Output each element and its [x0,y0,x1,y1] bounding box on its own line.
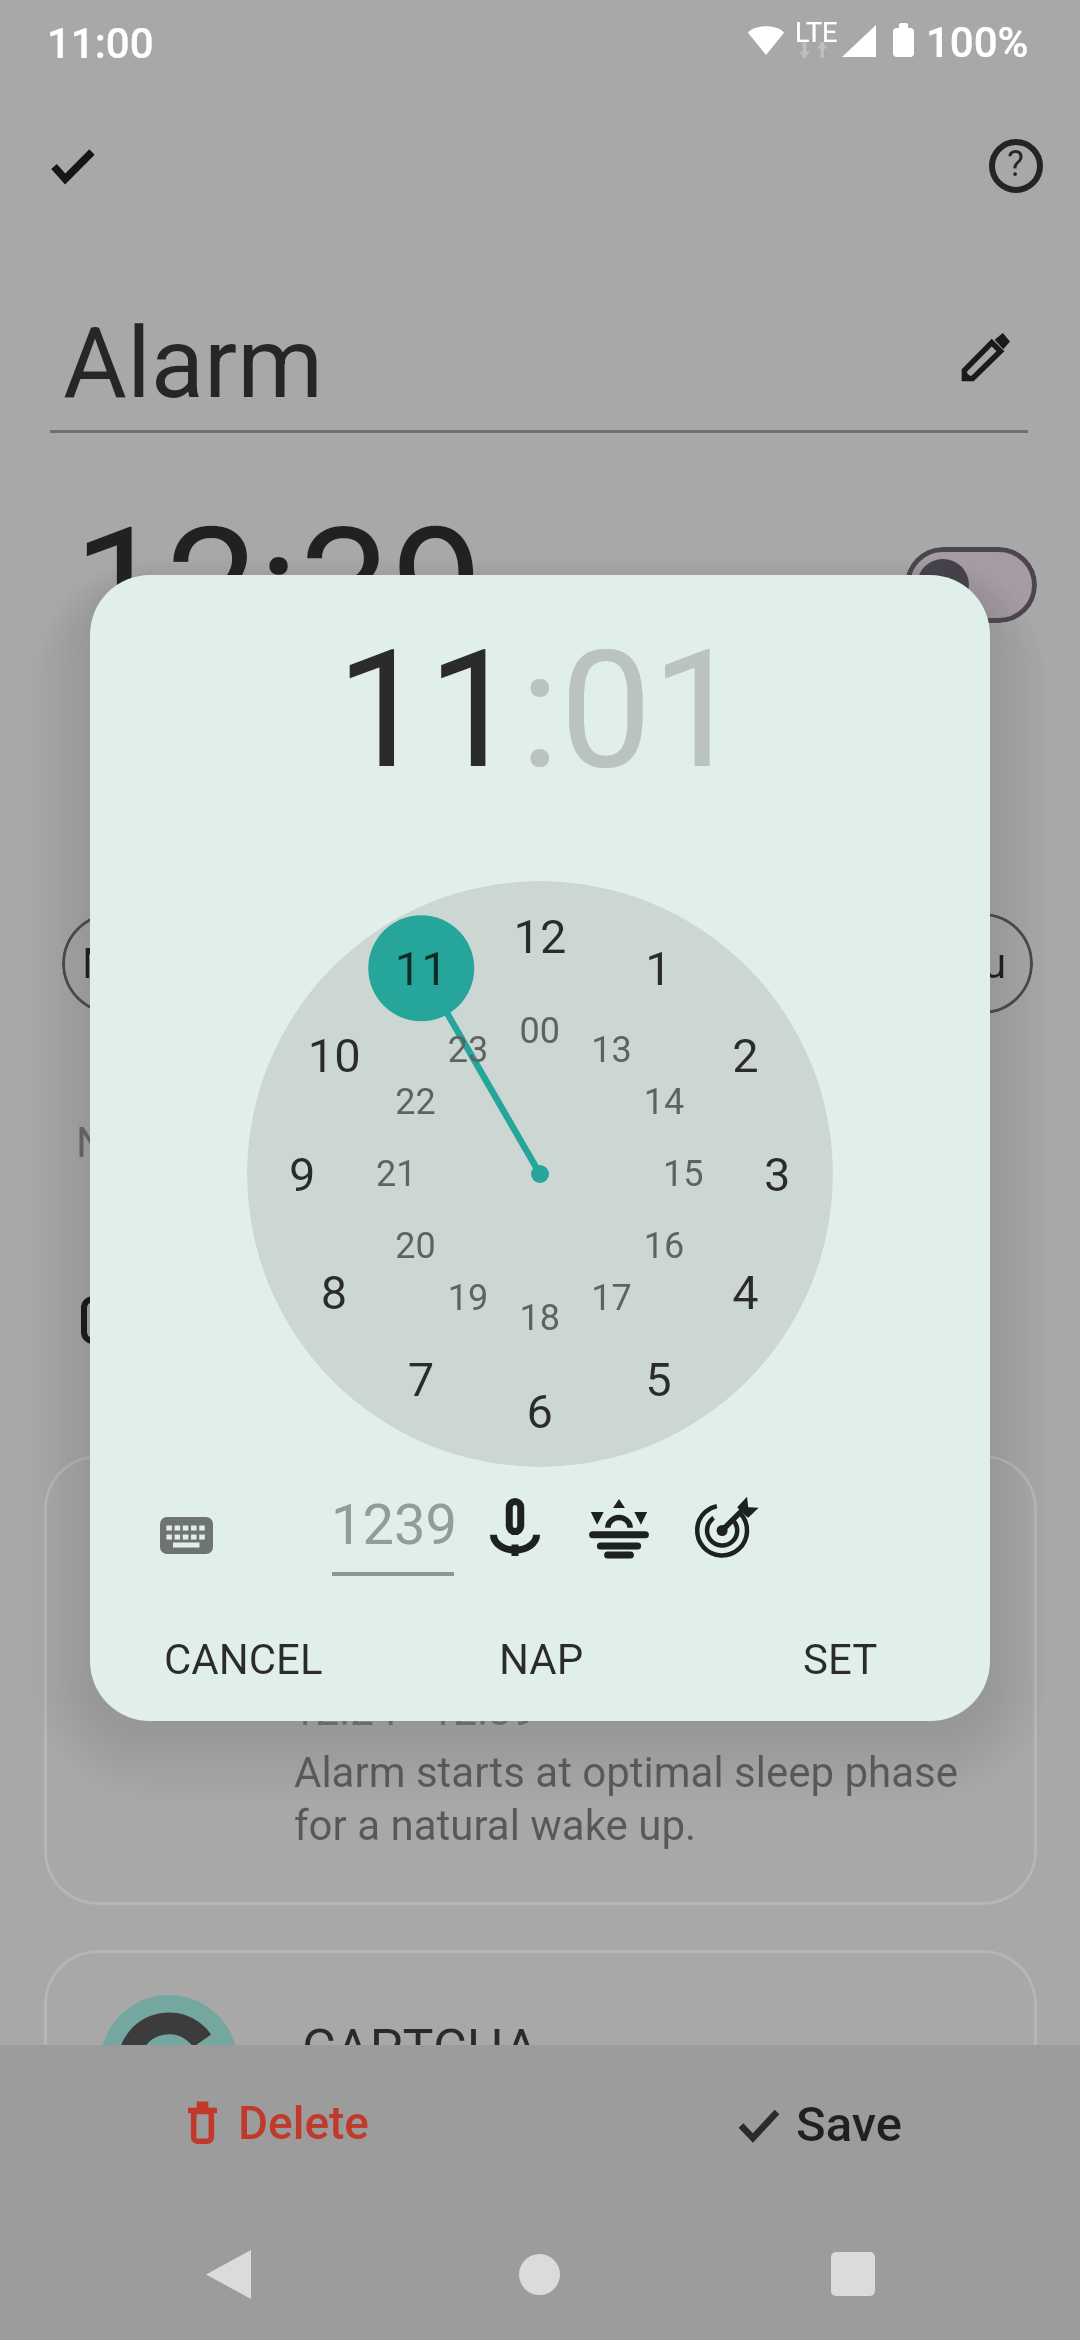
button[interactable]: 01 [560,615,744,806]
staticText: Save [796,2096,902,2153]
button[interactable]: Switch to text input [136,1485,237,1586]
button[interactable]: Save [729,2082,914,2167]
button[interactable]: Alarm on [905,547,1037,623]
button[interactable]: Voice input [469,1481,561,1573]
staticText: Nap after alarm [76,1118,368,1167]
button[interactable]: Sunrise time [573,1481,665,1573]
staticText: SET [803,1635,878,1684]
button[interactable]: Su [932,913,1033,1014]
staticText: 100% [926,18,1029,67]
staticText: ? [1007,143,1025,185]
staticText: CAPTCHA [302,2018,539,2079]
button[interactable] [247,881,833,1467]
staticText: Th [523,939,572,988]
staticText: CANCEL [164,1635,323,1684]
staticText: 11:00 [47,19,154,68]
staticText: Alarm starts at optimal sleep phase for … [294,1748,959,1850]
staticText: NAP [499,1635,584,1684]
button[interactable]: Th [497,913,598,1014]
button[interactable]: We [352,913,453,1014]
button[interactable]: Smart target time [679,1481,771,1573]
button[interactable]: 1239 [312,1492,476,1592]
staticText: LTE [795,17,838,49]
staticText: Su [958,939,1007,988]
button[interactable]: Edit name [931,301,1041,411]
button[interactable]: Recent apps [821,2242,885,2306]
button[interactable]: Mo [62,913,163,1014]
button[interactable]: Done [17,109,129,221]
button[interactable]: Help [961,111,1071,221]
button[interactable]: CAPTCHA [44,1950,1037,2280]
staticText: Mo [82,939,143,988]
button[interactable]: Delete [176,2082,381,2164]
staticText: Delete [238,2096,369,2150]
button[interactable]: CANCEL [138,1609,349,1710]
button[interactable]: NAP [473,1609,610,1710]
staticText: Alarm [63,306,324,421]
staticText: 12.24 - 12.39 [292,1686,536,1735]
button[interactable]: 12.24 - 12.39 [44,1455,1037,1905]
button[interactable]: Home [507,2242,571,2306]
staticText: We [373,939,432,988]
button[interactable]: 11 [336,615,520,806]
button[interactable]: Fr [642,913,743,1014]
button[interactable]: SET [777,1609,904,1710]
staticText: 12:39 [73,492,484,685]
staticText: : [520,615,560,806]
staticText: 1239 [331,1492,457,1558]
staticText: Ringtone [160,1300,342,1354]
button[interactable]: Back [196,2242,260,2306]
